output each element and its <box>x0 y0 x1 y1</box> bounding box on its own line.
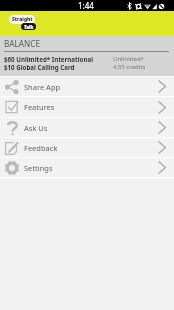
staticText: Features <box>24 102 55 112</box>
staticText: Ask Us <box>24 123 48 133</box>
staticText: Feedback <box>24 143 58 153</box>
button[interactable]: Ask Us <box>0 118 174 137</box>
staticText: Straight <box>12 16 33 23</box>
staticText: Share App <box>24 82 61 92</box>
staticText: $60 Unlimited* International <box>4 55 94 63</box>
staticText: 4.55 credits <box>113 63 146 71</box>
button[interactable]: Features <box>0 97 174 117</box>
button[interactable]: Feedback <box>0 138 174 157</box>
button[interactable]: Settings <box>0 158 174 177</box>
button[interactable]: Straight Talk <box>9 15 35 24</box>
button[interactable]: Share App <box>0 77 174 96</box>
staticText: BALANCE <box>4 38 41 49</box>
staticText: $10 Global Calling Card <box>4 63 75 71</box>
staticText: Settings <box>24 163 53 173</box>
button[interactable]: $60 Unlimited* International <box>0 52 174 71</box>
staticText: 1:44 <box>78 0 94 11</box>
staticText: Unlimited* <box>113 55 144 63</box>
staticText: Talk <box>24 24 34 30</box>
